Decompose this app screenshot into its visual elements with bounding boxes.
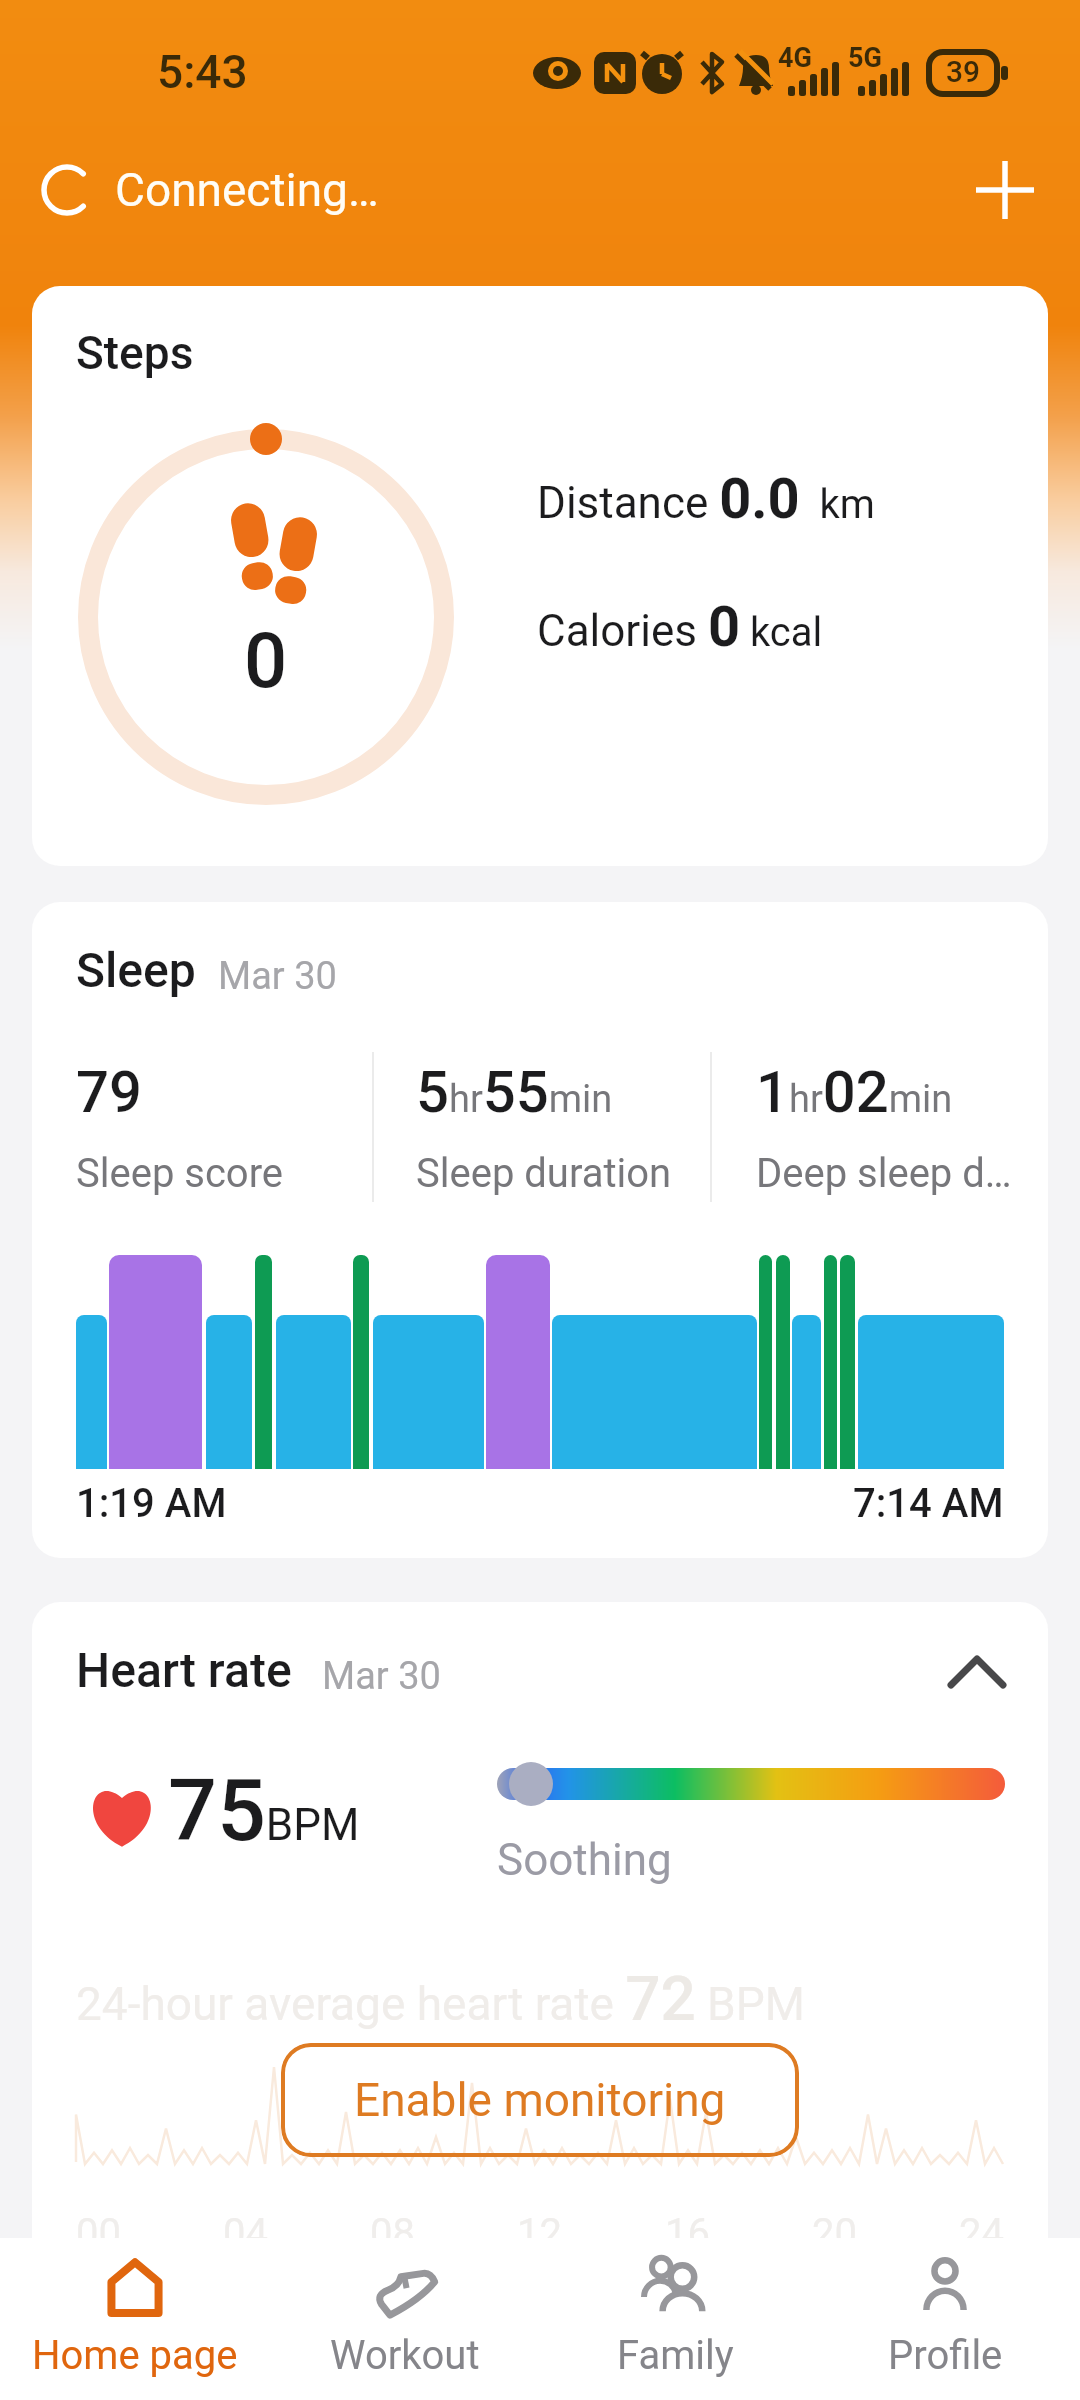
staticText: 20 xyxy=(812,2210,857,2257)
staticText: Family xyxy=(617,2332,734,2379)
button[interactable] xyxy=(960,145,1050,235)
button[interactable]: Workout xyxy=(270,2238,540,2400)
staticText: 75BPM xyxy=(168,1760,360,1861)
button[interactable]: Heart rate xyxy=(32,1602,1048,2302)
staticText: 39 xyxy=(946,54,981,89)
button[interactable]: Sleep xyxy=(32,902,1048,1558)
staticText: 1:19 AM xyxy=(76,1480,227,1527)
staticText: Home page xyxy=(32,2332,238,2379)
staticText: 5hr55min xyxy=(416,1058,613,1126)
staticText: Mar 30 xyxy=(322,1654,441,1699)
staticText: 0 xyxy=(244,616,288,705)
staticText: Workout xyxy=(330,2332,480,2379)
staticText: 1hr02min xyxy=(756,1058,953,1126)
staticText: 5:43 xyxy=(157,45,248,99)
staticText: 12 xyxy=(517,2210,562,2257)
staticText: Profile xyxy=(888,2332,1003,2379)
staticText: 16 xyxy=(665,2210,710,2257)
staticText: 7:14 AM xyxy=(853,1480,1004,1527)
button[interactable]: Family xyxy=(540,2238,810,2400)
staticText: 4G xyxy=(778,42,812,74)
staticText: Sleep duration xyxy=(416,1150,672,1197)
staticText: 00 xyxy=(76,2210,121,2257)
staticText: Soothing xyxy=(497,1834,672,1886)
staticText: Sleep score xyxy=(76,1150,284,1197)
staticText: Steps xyxy=(76,326,194,380)
button[interactable]: Steps xyxy=(32,286,1048,866)
staticText: 79 xyxy=(76,1058,142,1126)
button[interactable]: Home page xyxy=(0,2238,270,2400)
staticText: Calories 0 kcal xyxy=(537,594,823,660)
staticText: Enable monitoring xyxy=(354,2073,726,2127)
staticText: Mar 30 xyxy=(218,954,337,999)
staticText: Distance 0.0 km xyxy=(537,466,875,532)
staticText: Heart rate xyxy=(76,1642,292,1698)
staticText: 24-hour average heart rate 72 BPM xyxy=(76,1962,805,2035)
button[interactable] xyxy=(932,1632,1022,1712)
staticText: Connecting… xyxy=(115,163,379,217)
staticText: 5G xyxy=(848,42,882,74)
staticText: Sleep xyxy=(76,942,196,998)
button[interactable]: Enable monitoring xyxy=(281,2043,799,2157)
button[interactable]: Profile xyxy=(810,2238,1080,2400)
staticText: 08 xyxy=(370,2210,415,2257)
staticText: 24 xyxy=(959,2210,1004,2257)
staticText: 04 xyxy=(223,2210,268,2257)
staticText: Deep sleep d… xyxy=(756,1150,1012,1197)
